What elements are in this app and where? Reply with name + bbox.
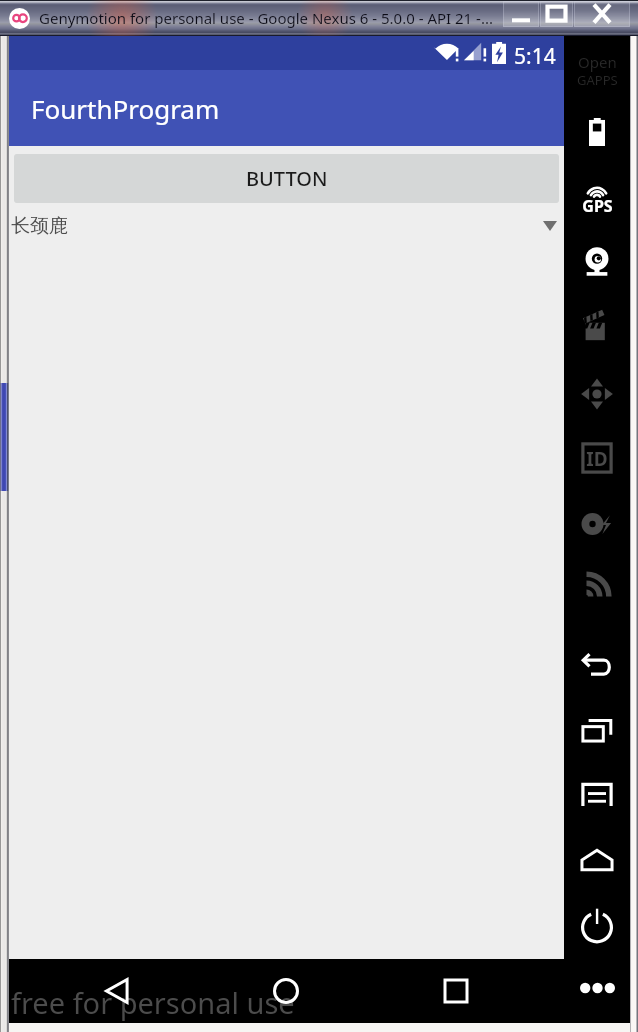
button[interactable]: Open GAPPS [564,52,630,86]
button[interactable]: Screen recorder [564,302,630,352]
button[interactable]: Identifiers [564,433,630,483]
staticText: BUTTON [246,165,328,192]
button[interactable]: Home [260,959,312,1023]
other: Wi-Fi [435,41,461,63]
button[interactable]: Battery [564,107,630,157]
button[interactable]: Network [564,561,630,611]
button[interactable]: More options [564,966,630,1010]
staticText: 5:14 [514,42,556,71]
button[interactable]: Back [91,959,143,1023]
button[interactable]: Close [574,1,630,27]
button[interactable]: GPS [564,166,630,216]
other: Battery charging [492,42,506,64]
button[interactable]: Camera [564,237,630,287]
button[interactable]: BUTTON [14,154,559,203]
staticText: free for personal use [11,983,295,1022]
button[interactable]: Recent apps [564,705,630,755]
staticText: 长颈鹿 [11,214,68,238]
staticText: GPS [582,195,613,217]
button[interactable]: Recent apps [430,959,482,1023]
button[interactable]: Minimize [503,1,539,27]
button[interactable]: Menu [564,770,630,820]
button[interactable]: 长颈鹿 [9,203,564,249]
staticText: FourthProgram [31,91,220,126]
other: Mobile signal [463,41,489,63]
staticText: ID [586,446,608,472]
button[interactable]: D-pad [564,369,630,419]
staticText: Genymotion for personal use - Google Nex… [39,8,493,28]
button[interactable]: Power [564,899,630,949]
button[interactable]: Back [564,640,630,690]
staticText: GAPPS [577,71,618,85]
button[interactable]: Disk IO [564,499,630,549]
staticText: Open [578,52,617,72]
button[interactable]: Home [564,835,630,885]
button[interactable]: Maximize [540,1,573,27]
